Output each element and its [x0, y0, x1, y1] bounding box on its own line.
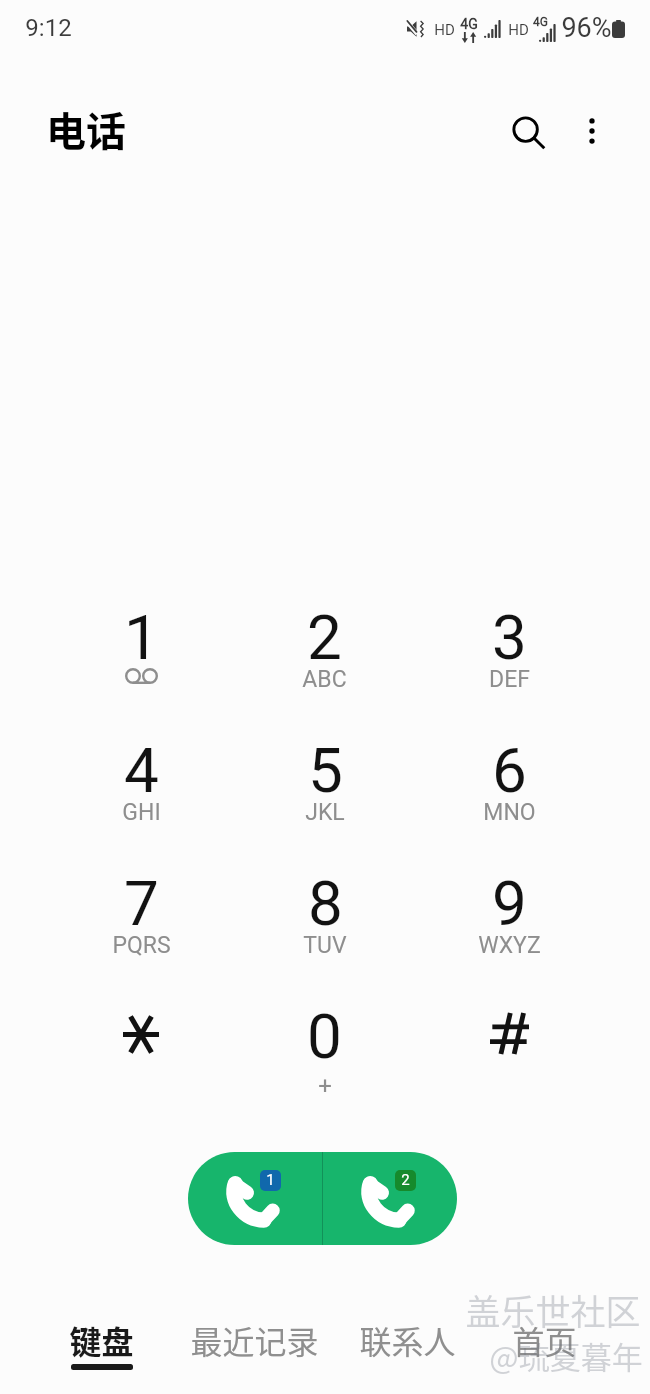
staticText: 键盘: [69, 1317, 134, 1363]
staticText: 6: [492, 734, 527, 807]
staticText: 联系人: [359, 1317, 456, 1363]
button[interactable]: Call with SIM 1: [188, 1152, 322, 1245]
staticText: 3: [492, 601, 527, 674]
button[interactable]: 5: [216, 720, 433, 853]
button[interactable]: 4: [33, 720, 249, 853]
staticText: 7: [124, 867, 159, 940]
staticText: 96%: [561, 12, 612, 44]
staticText: GHI: [122, 799, 161, 826]
button[interactable]: Search: [501, 105, 557, 161]
button[interactable]: 1: [33, 587, 249, 720]
button[interactable]: 联系人: [345, 1313, 470, 1367]
button[interactable]: 首页: [498, 1313, 591, 1367]
staticText: 1: [124, 601, 159, 674]
button[interactable]: 8: [216, 853, 433, 986]
button[interactable]: 0: [216, 986, 433, 1119]
staticText: 0: [307, 1000, 342, 1073]
staticText: 首页: [512, 1317, 577, 1363]
staticText: 最近记录: [190, 1317, 319, 1363]
button[interactable]: Star: [33, 986, 249, 1119]
staticText: MNO: [483, 799, 536, 826]
button[interactable]: Call with SIM 2: [322, 1152, 457, 1245]
staticText: 4G: [460, 16, 478, 32]
staticText: 盖乐世社区: [465, 1284, 641, 1335]
staticText: 电话: [46, 100, 126, 158]
staticText: 8: [308, 867, 343, 940]
button[interactable]: 7: [33, 853, 249, 986]
staticText: 1: [266, 1171, 275, 1189]
button[interactable]: Pound: [401, 986, 618, 1119]
button[interactable]: 3: [401, 587, 618, 720]
staticText: HD: [434, 21, 455, 39]
button[interactable]: 键盘: [55, 1313, 148, 1374]
staticText: +: [318, 1072, 332, 1100]
button[interactable]: 9: [401, 853, 618, 986]
staticText: 5: [308, 734, 343, 807]
staticText: WXYZ: [478, 932, 541, 959]
button[interactable]: 2: [216, 587, 433, 720]
staticText: 9: [492, 867, 527, 940]
staticText: JKL: [305, 799, 345, 826]
staticText: 4G: [533, 15, 548, 29]
staticText: 2: [401, 1171, 410, 1189]
staticText: 2: [307, 601, 342, 674]
staticText: @琉夏暮年: [489, 1333, 643, 1378]
button[interactable]: 6: [401, 720, 618, 853]
staticText: 9:12: [25, 14, 72, 42]
staticText: HD: [508, 21, 529, 39]
button[interactable]: 最近记录: [176, 1313, 333, 1367]
staticText: TUV: [303, 932, 347, 959]
staticText: PQRS: [112, 932, 171, 959]
staticText: ABC: [302, 666, 347, 693]
staticText: 4: [124, 734, 159, 807]
button[interactable]: More options: [566, 105, 618, 157]
staticText: DEF: [489, 666, 530, 693]
